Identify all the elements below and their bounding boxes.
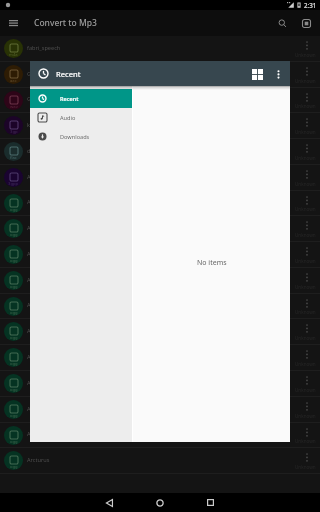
staticText: Unknown (295, 387, 316, 393)
staticText: m4a (9, 52, 18, 58)
button[interactable]: More options (299, 372, 315, 388)
button[interactable]: More options (299, 449, 315, 465)
button[interactable]: More options (299, 398, 315, 414)
staticText: ogg (10, 232, 18, 238)
button[interactable]: m4a (0, 36, 320, 61)
button[interactable]: More options (269, 65, 287, 83)
button[interactable]: Grid view (246, 63, 268, 85)
button[interactable]: More options (299, 192, 315, 208)
button[interactable]: ogg (0, 397, 320, 422)
button[interactable]: More options (299, 217, 315, 233)
staticText: Unknown (295, 361, 316, 367)
staticText: Unknown (295, 438, 316, 444)
staticText: Unknown (295, 129, 316, 135)
button[interactable]: More options (299, 89, 315, 105)
staticText: 2:31 (304, 1, 317, 9)
staticText: ogg (10, 464, 18, 470)
button[interactable]: aac (0, 62, 320, 87)
button[interactable]: More options (299, 114, 315, 130)
button[interactable]: Home (149, 493, 171, 512)
staticText: Arcturus (27, 198, 50, 206)
button[interactable]: More options (299, 424, 315, 440)
staticText: Convert to Mp3 (34, 17, 97, 29)
button[interactable]: Search (270, 11, 294, 35)
staticText: aac (10, 78, 17, 84)
staticText: Arcturus (27, 379, 50, 387)
button[interactable]: Recent (30, 89, 132, 108)
staticText: Arcturus (27, 405, 50, 413)
button[interactable]: flac (0, 139, 320, 164)
staticText: Unknown (295, 52, 316, 58)
button[interactable]: More options (299, 63, 315, 79)
button[interactable]: 3gp (0, 113, 320, 138)
button[interactable]: Audio (30, 108, 132, 127)
staticText: ogg (10, 284, 18, 290)
button[interactable]: ogg (0, 191, 320, 215)
staticText: kalimba (27, 121, 48, 129)
staticText: Unknown (295, 258, 316, 264)
staticText: Unknown (295, 155, 316, 161)
staticText: ogg (10, 387, 18, 393)
staticText: 3gpp (8, 181, 19, 187)
staticText: Unknown (295, 464, 316, 470)
button[interactable]: ogg (0, 423, 320, 447)
staticText: flac (10, 155, 17, 161)
staticText: ogg (10, 335, 18, 341)
staticText: Unknown (295, 206, 316, 212)
staticText: Unknown (295, 284, 316, 290)
button[interactable]: ogg (0, 345, 320, 370)
button[interactable]: Select mode (294, 11, 318, 35)
button[interactable]: More options (299, 346, 315, 362)
button[interactable]: ogg (0, 242, 320, 267)
staticText: Arcturus (27, 456, 50, 464)
button[interactable]: ogg (0, 294, 320, 318)
staticText: Arcturus (27, 301, 50, 309)
button[interactable]: Back (98, 493, 120, 512)
staticText: ogg (10, 258, 18, 264)
button[interactable]: ogg (0, 448, 320, 473)
button[interactable]: More options (299, 140, 315, 156)
button[interactable]: More options (299, 295, 315, 311)
staticText: wav (10, 104, 18, 110)
button[interactable]: Downloads (30, 127, 132, 146)
button[interactable]: Menu (0, 10, 26, 36)
button[interactable]: ogg (0, 371, 320, 396)
staticText: ogg (10, 361, 18, 367)
button[interactable]: More options (299, 37, 315, 53)
staticText: dream (27, 147, 45, 155)
staticText: ogg (10, 413, 18, 419)
staticText: Unknown (295, 413, 316, 419)
staticText: 3gp (10, 129, 18, 135)
staticText: ogg (10, 207, 18, 213)
staticText: Arcturus (27, 353, 50, 361)
button[interactable]: 3gpp (0, 165, 320, 190)
staticText: Arcturus (27, 250, 50, 258)
staticText: Unknown (295, 232, 316, 238)
staticText: Arcturus (27, 173, 50, 181)
staticText: Arcturus (27, 224, 50, 232)
staticText: Arcturus (27, 327, 50, 335)
button[interactable]: ogg (0, 319, 320, 344)
button[interactable]: ogg (0, 216, 320, 241)
button[interactable]: More options (299, 269, 315, 285)
staticText: Downloads (60, 133, 90, 141)
staticText: Unknown (295, 309, 316, 315)
button[interactable]: wav (0, 88, 320, 112)
staticText: Gravity (27, 95, 46, 103)
staticText: ogg (10, 310, 18, 316)
staticText: Unknown (295, 335, 316, 341)
button[interactable]: More options (299, 320, 315, 336)
button[interactable]: ogg (0, 268, 320, 293)
staticText: Arcturus (27, 430, 50, 438)
staticText: Recent (56, 69, 81, 79)
button[interactable]: Recent apps (199, 493, 221, 512)
staticText: Recent (60, 95, 79, 103)
staticText: ogg (10, 439, 18, 445)
staticText: fabri_speech (27, 44, 61, 52)
button[interactable]: More options (299, 243, 315, 259)
button[interactable]: More options (299, 166, 315, 182)
staticText: Unknown (295, 103, 316, 109)
staticText: Unknown (295, 78, 316, 84)
staticText: Gravit (27, 70, 43, 78)
staticText: Unknown (295, 181, 316, 187)
